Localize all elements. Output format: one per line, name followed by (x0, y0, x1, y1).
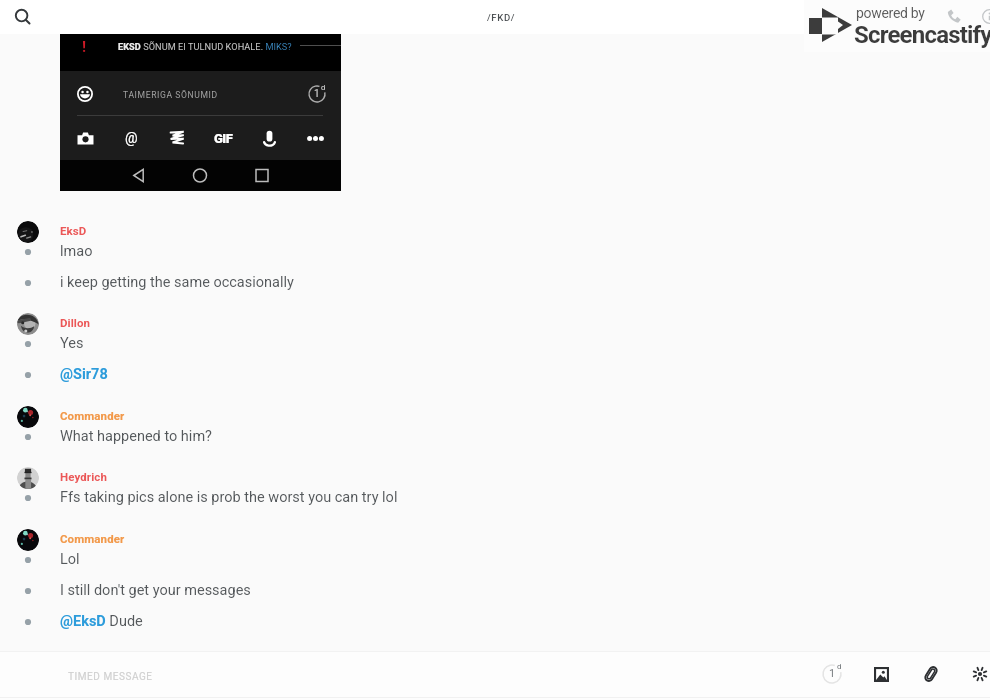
staticText: TIMED MESSAGE (68, 671, 153, 683)
staticText: @EksD Dude (60, 613, 143, 630)
staticText: Heydrich (60, 470, 107, 483)
staticText: 1 (829, 667, 836, 680)
staticText: Lol (60, 551, 80, 568)
staticText: Commander (60, 532, 125, 545)
button[interactable]: GIF (210, 125, 236, 151)
staticText: Screencastify (854, 21, 990, 49)
button[interactable]: Lol (0, 549, 990, 575)
staticText: What happened to him? (60, 428, 212, 445)
button[interactable]: What happened to him? (0, 426, 990, 452)
staticText: EKSD SÕNUM EI TULNUD KOHALE. MIKS? (118, 41, 292, 52)
staticText: powered by (856, 5, 925, 21)
staticText: Ffs taking pics alone is prob the worst … (60, 489, 398, 506)
button[interactable]: Search (9, 3, 37, 31)
button[interactable]: Info (976, 3, 990, 29)
button[interactable]: Call (941, 3, 967, 29)
button[interactable]: Timer (818, 659, 848, 689)
staticText: lmao (60, 243, 93, 260)
button[interactable]: Shared screenshot (60, 34, 341, 191)
button[interactable]: Commander avatar (17, 529, 39, 551)
button[interactable]: Photo (866, 659, 896, 689)
button[interactable]: Heydrich avatar (17, 467, 39, 489)
button[interactable]: Voice (256, 125, 282, 151)
button[interactable]: Emoji (72, 81, 98, 107)
staticText: GIF (214, 131, 233, 146)
button[interactable]: Camera (72, 125, 98, 151)
staticText: Commander (60, 409, 125, 422)
staticText: ! (82, 38, 87, 56)
button[interactable]: Ffs taking pics alone is prob the worst … (0, 487, 990, 513)
staticText: @Sir78 (60, 366, 108, 383)
staticText: d (837, 662, 842, 671)
staticText: TAIMERIGA SÕNUMID (123, 90, 218, 100)
button[interactable]: I still don't get your messages (0, 580, 990, 606)
button[interactable]: Effects (965, 659, 990, 689)
button[interactable]: More (302, 125, 328, 151)
button[interactable]: EksD avatar (17, 221, 39, 243)
button[interactable]: Mention (118, 125, 144, 151)
button[interactable]: Commander avatar (17, 406, 39, 428)
button[interactable]: @Sir78 (0, 364, 990, 390)
button[interactable]: lmao (0, 241, 990, 267)
staticText: 1 (314, 88, 320, 100)
staticText: Dillon (60, 316, 91, 329)
button[interactable]: i keep getting the same occasionally (0, 272, 990, 298)
staticText: Yes (60, 335, 84, 352)
staticText: i keep getting the same occasionally (60, 274, 294, 291)
staticText: EksD (60, 224, 87, 237)
button[interactable]: Dillon avatar (17, 313, 39, 335)
staticText: @ (125, 130, 138, 146)
button[interactable]: Sticker (164, 125, 190, 151)
button[interactable]: Message timer (303, 80, 331, 108)
staticText: I still don't get your messages (60, 582, 251, 599)
button[interactable]: Yes (0, 333, 990, 359)
button[interactable]: @EksD Dude (0, 611, 990, 637)
staticText: /FKD/ (487, 12, 516, 23)
button[interactable]: Attach (916, 659, 946, 689)
staticText: d (321, 83, 326, 92)
